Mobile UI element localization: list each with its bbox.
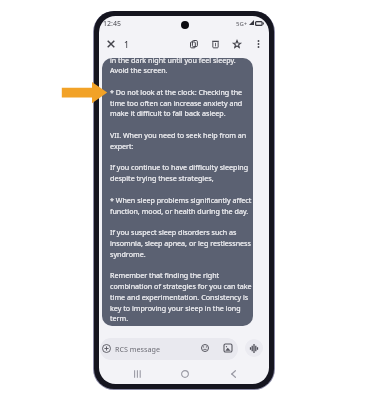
button[interactable]: in the dark night until you feel sleepy. (102, 58, 253, 326)
button[interactable]: Voice input (245, 339, 263, 357)
staticText: term. (110, 313, 129, 323)
staticText: If you suspect sleep disorders such as (110, 227, 237, 237)
staticText: make it difficult to fall back asleep. (110, 108, 226, 118)
staticText: syndrome. (110, 249, 146, 259)
button[interactable]: Emoji (196, 339, 214, 357)
staticText: 1 (124, 39, 129, 51)
button[interactable]: More options (249, 35, 267, 53)
staticText: If you continue to have difficulty sleep… (110, 162, 249, 172)
staticText: time and experimentation. Consistency is (110, 292, 249, 302)
staticText: * Do not look at the clock: Checking the (110, 87, 243, 97)
staticText: in the dark night until you feel sleepy. (110, 58, 236, 65)
staticText: * When sleep problems significantly affe… (110, 195, 252, 205)
staticText: VII. When you need to seek help from an (110, 130, 247, 140)
button[interactable] (100, 338, 238, 360)
button[interactable]: Recents (128, 365, 146, 383)
button[interactable]: Home (176, 365, 194, 383)
button[interactable]: Copy (185, 35, 203, 53)
staticText: expert: (110, 141, 134, 151)
staticText: key to improving your sleep in the long (110, 303, 241, 313)
button[interactable]: Back (224, 365, 242, 383)
staticText: time too often can increase anxiety and (110, 98, 243, 108)
staticText: insomnia, sleep apnea, or leg restlessne… (110, 238, 251, 248)
staticText: despite trying these strategies, (110, 173, 214, 183)
button[interactable]: Delete (206, 35, 224, 53)
staticText: function, mood, or health during the day… (110, 206, 249, 216)
button[interactable]: Gallery (219, 339, 237, 357)
button[interactable]: Star (228, 35, 246, 53)
button[interactable]: Add attachment (99, 339, 115, 357)
staticText: Avoid the screen. (110, 65, 168, 75)
button[interactable]: Close (102, 35, 120, 53)
staticText: combination of strategies for you can ta… (110, 281, 252, 291)
staticText: 12:45 (103, 19, 121, 29)
staticText: 5G+ (236, 20, 248, 28)
staticText: Remember that finding the right (110, 270, 220, 280)
staticText: RCS message (115, 344, 160, 354)
